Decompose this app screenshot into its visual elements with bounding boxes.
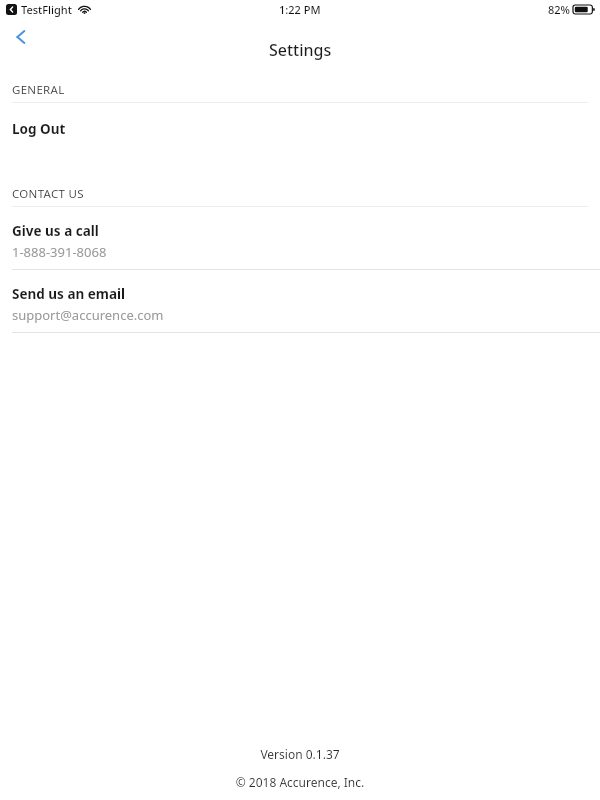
staticText: 82% (548, 2, 570, 17)
staticText: 1:22 PM (279, 2, 321, 17)
staticText: GENERAL (12, 82, 65, 98)
staticText: Version 0.1.37 (0, 746, 600, 762)
staticText: Give us a call (12, 222, 99, 240)
staticText: 1-888-391-8068 (12, 243, 107, 261)
staticText: support@accurence.com (12, 306, 164, 324)
button[interactable]: Give us a call (0, 207, 600, 270)
staticText: © 2018 Accurence, Inc. (0, 774, 600, 790)
button[interactable]: Send us an email (0, 270, 600, 333)
staticText: TestFlight (21, 2, 72, 17)
button[interactable]: Log Out (0, 103, 600, 146)
staticText: Send us an email (12, 285, 126, 303)
staticText: Settings (269, 39, 332, 61)
staticText: Log Out (12, 120, 66, 138)
staticText: CONTACT US (12, 186, 84, 202)
button[interactable]: Back (4, 20, 38, 54)
